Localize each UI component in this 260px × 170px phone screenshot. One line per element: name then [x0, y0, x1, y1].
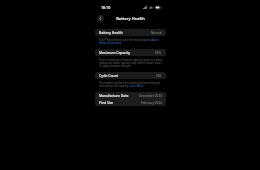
button[interactable]: First Use: [95, 99, 166, 106]
button[interactable]: Maximum Capacity: [95, 49, 166, 56]
staticText: 18:10: [101, 5, 111, 10]
staticText: Normal: [151, 31, 162, 35]
staticText: Manufacture Date: [99, 93, 129, 98]
button[interactable]: Battery Health: [95, 29, 166, 36]
staticText: First Use: [99, 100, 114, 105]
staticText: Battery Health: [116, 16, 145, 21]
staticText: December 2023: [139, 94, 162, 98]
staticText: This iPhone battery's performance appear…: [99, 38, 163, 44]
button[interactable]: Back: [97, 15, 104, 22]
staticText: Cycle Count: [99, 73, 119, 78]
staticText: Maximum Capacity: [99, 50, 131, 55]
staticText: 282: [156, 74, 162, 78]
staticText: The number of times the battery has been…: [99, 81, 163, 87]
button[interactable]: Cycle Count: [95, 72, 166, 79]
staticText: 95%: [155, 51, 162, 55]
staticText: This is a measure of battery capacity re…: [99, 58, 163, 67]
staticText: February 2024: [141, 101, 162, 105]
staticText: Battery Health: [99, 30, 123, 35]
button[interactable]: Manufacture Date: [95, 92, 166, 99]
